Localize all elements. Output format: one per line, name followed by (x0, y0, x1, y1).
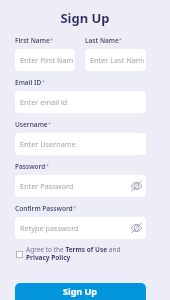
staticText: Sign Up (0, 9, 170, 27)
button[interactable]: Agree to terms checkbox (15, 245, 123, 262)
button[interactable]: Show password (129, 221, 143, 235)
staticText: Retype password (20, 223, 79, 233)
staticText: * (119, 36, 123, 43)
button[interactable]: Enter First Name (15, 49, 75, 71)
staticText: Enter Username (20, 139, 76, 149)
staticText: Last Name (85, 36, 119, 45)
other: Agree to terms checkbox (16, 251, 23, 258)
staticText: Email ID (15, 78, 42, 87)
staticText: Enter email id (20, 97, 68, 107)
staticText: First Name (15, 36, 50, 45)
staticText: Username (15, 120, 48, 129)
staticText: Enter Password (20, 181, 74, 191)
button[interactable]: Retype password (15, 217, 146, 239)
button[interactable]: Enter Username (15, 133, 146, 155)
button[interactable]: Show password (129, 179, 143, 193)
staticText: * (42, 78, 46, 85)
staticText: * (73, 204, 77, 211)
button[interactable]: Enter Password (15, 175, 146, 197)
staticText: Enter Last Name (90, 55, 144, 65)
staticText: * (48, 120, 52, 127)
staticText: * (46, 162, 50, 169)
staticText: Enter First Name (20, 55, 73, 65)
button[interactable]: Enter Last Name (85, 49, 146, 71)
staticText: Confirm Password (15, 204, 73, 213)
button[interactable]: Enter email id (15, 91, 146, 113)
staticText: * (50, 36, 54, 43)
staticText: Agree to the Terms of Use and Privacy Po… (26, 245, 123, 262)
staticText: Sign Up (63, 285, 98, 297)
staticText: Password (15, 162, 46, 171)
button[interactable]: Sign Up (15, 283, 146, 300)
